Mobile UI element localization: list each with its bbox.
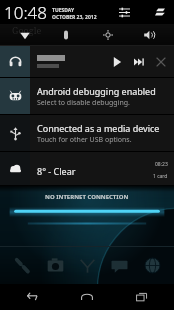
button[interactable]: Recent apps bbox=[119, 284, 165, 310]
button[interactable]: Volume bbox=[133, 26, 165, 44]
button[interactable]: Quick settings bbox=[115, 3, 133, 21]
staticText: Select to disable debugging. bbox=[37, 98, 130, 108]
staticText: Google bbox=[12, 24, 42, 36]
button[interactable]: 8° - Clear bbox=[0, 152, 174, 185]
staticText: OCTOBER 23, 2012 bbox=[52, 14, 97, 21]
button[interactable]: Brightness bbox=[92, 26, 124, 44]
staticText: Connected as a media device bbox=[37, 122, 160, 134]
button[interactable]: Signal strength bbox=[151, 3, 169, 21]
button[interactable]: Dismiss bbox=[150, 51, 172, 73]
staticText: NO INTERNET CONNECTION bbox=[45, 193, 129, 201]
staticText: 8° - Clear bbox=[37, 165, 76, 177]
button[interactable]: Play bbox=[0, 46, 174, 77]
button[interactable]: Next track bbox=[128, 51, 150, 73]
button[interactable]: Back bbox=[9, 284, 55, 310]
staticText: Android debugging enabled bbox=[37, 85, 156, 97]
button[interactable]: Messaging bbox=[106, 252, 132, 278]
button[interactable]: Android debugging enabled bbox=[0, 78, 174, 114]
button[interactable]: Home bbox=[64, 284, 110, 310]
staticText: TUESDAY bbox=[52, 7, 75, 14]
button[interactable]: Connected as a media device bbox=[0, 115, 174, 151]
staticText: 10:48 bbox=[4, 1, 47, 24]
button[interactable]: Camera bbox=[42, 252, 68, 278]
button[interactable]: Wi-Fi bbox=[9, 26, 41, 44]
button[interactable]: Play bbox=[106, 51, 128, 73]
button[interactable]: Browser bbox=[139, 252, 165, 278]
staticText: 08:23 bbox=[155, 161, 168, 168]
staticText: 1 card bbox=[153, 173, 168, 180]
button[interactable]: Phone bbox=[9, 252, 35, 278]
button[interactable]: All apps bbox=[74, 252, 100, 278]
staticText: Touch for other USB options. bbox=[37, 135, 132, 145]
button[interactable]: Vibrate bbox=[50, 26, 82, 44]
